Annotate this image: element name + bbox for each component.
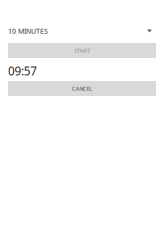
staticText: START [74, 46, 90, 54]
button[interactable]: START [8, 43, 156, 58]
button[interactable]: 10 MINUTES [0, 24, 164, 38]
button[interactable]: CANCEL [8, 81, 156, 96]
staticText: CANCEL [72, 85, 92, 92]
staticText: 10 MINUTES [8, 26, 48, 36]
staticText: 09:57 [8, 63, 37, 79]
